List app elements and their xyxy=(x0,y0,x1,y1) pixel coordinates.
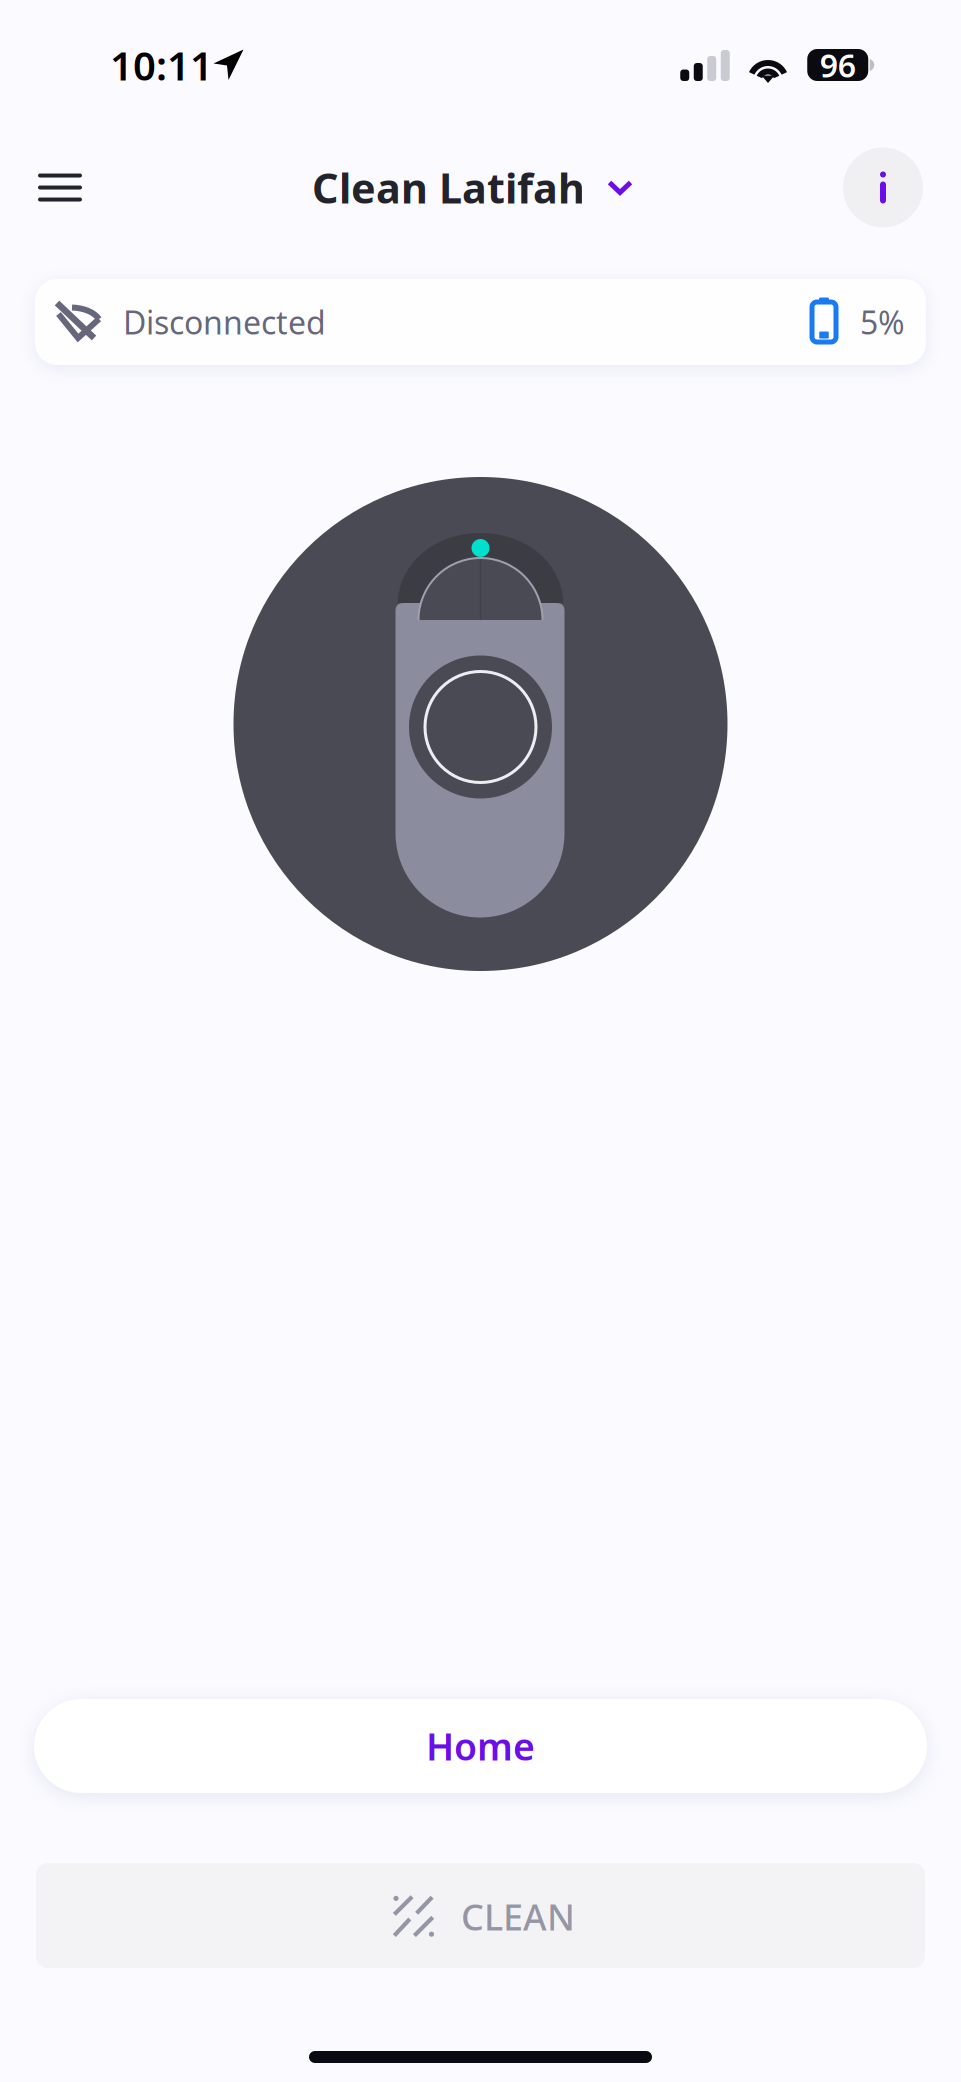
staticText: Home xyxy=(426,1721,535,1771)
button[interactable]: CLEAN xyxy=(36,1863,925,1968)
staticText: 96 xyxy=(820,44,856,86)
staticText: 5% xyxy=(860,301,905,343)
button[interactable]: Info xyxy=(843,147,923,227)
button[interactable]: Clean Latifah xyxy=(312,146,633,229)
staticText: Clean Latifah xyxy=(312,160,585,215)
button[interactable]: Home xyxy=(34,1699,927,1793)
staticText: CLEAN xyxy=(461,1893,575,1940)
staticText: Disconnected xyxy=(123,301,326,343)
button[interactable]: Menu xyxy=(18,151,102,223)
staticText: 10:11 xyxy=(110,38,213,91)
